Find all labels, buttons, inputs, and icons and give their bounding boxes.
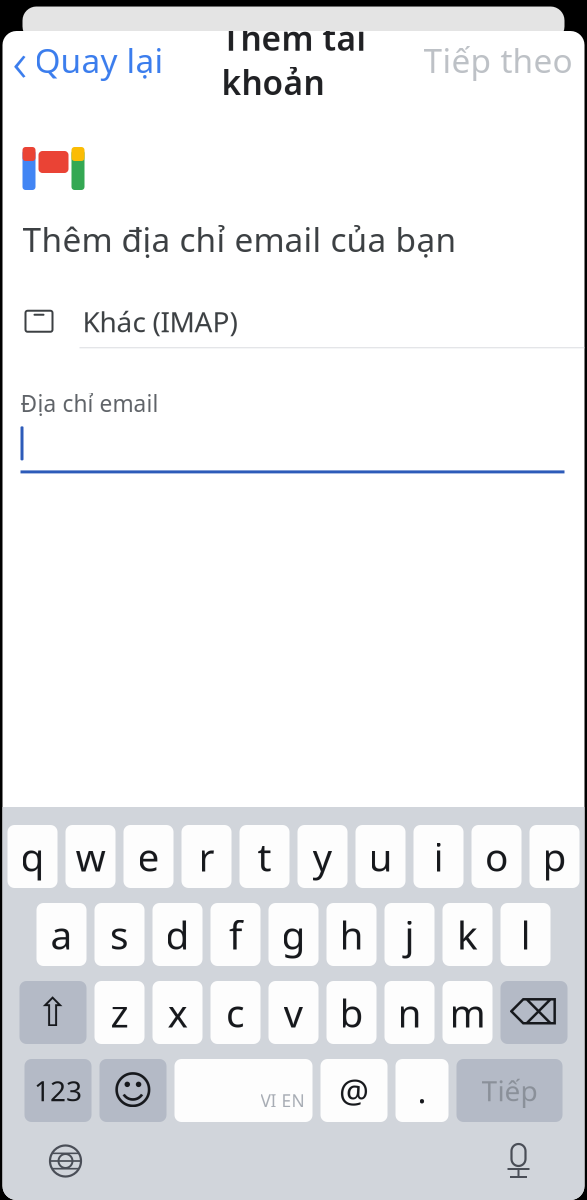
staticText: Thêm địa chỉ email của bạn [22,217,456,261]
staticText: z [110,987,128,1038]
button[interactable]: l [500,903,550,966]
staticText: Quay lại [34,38,163,82]
staticText: t [257,831,271,882]
staticText: x [167,987,187,1038]
button[interactable]: q [7,825,57,888]
staticText: q [20,831,44,882]
button[interactable]: Change keyboard [2,1139,87,1183]
staticText: e [137,831,159,882]
button[interactable]: 123 [24,1059,91,1122]
staticText: l [520,909,530,960]
staticText: c [226,987,245,1038]
staticText: Thêm tài khoản [221,16,365,104]
button[interactable]: Emoji [99,1059,166,1122]
staticText: VI EN [260,1089,304,1112]
staticText: i [433,831,443,882]
button[interactable]: v [268,981,318,1044]
button[interactable]: d [152,903,202,966]
staticText: y [312,831,332,882]
staticText: Khác (IMAP) [82,303,237,340]
staticText: Tiếp [481,1072,537,1109]
button[interactable]: x [152,981,202,1044]
staticText: Tiếp theo [423,38,572,82]
staticText: ⌫ [509,993,558,1032]
staticText: Địa chỉ email [20,388,158,418]
staticText: ⇧ [36,990,70,1035]
button[interactable]: m [442,981,492,1044]
button[interactable]: p [529,825,579,888]
button[interactable]: Tiếp theo [423,30,584,90]
staticText: m [449,987,485,1038]
button[interactable]: . [395,1059,448,1122]
staticText: s [110,909,129,960]
staticText: a [50,909,72,960]
button[interactable]: j [384,903,434,966]
button[interactable]: b [326,981,376,1044]
button[interactable]: a [36,903,86,966]
button[interactable]: Delete [500,981,567,1044]
staticText: k [457,909,478,960]
staticText: u [368,831,392,882]
button[interactable]: Shift [19,981,86,1044]
button[interactable]: ‹ [2,15,163,105]
button[interactable]: Space [174,1059,312,1122]
button[interactable]: Tiếp [456,1059,562,1122]
staticText: b [339,987,363,1038]
button[interactable]: Khác (IMAP) [2,295,584,348]
button[interactable]: e [123,825,173,888]
button[interactable]: r [181,825,231,888]
button[interactable]: c [210,981,260,1044]
button[interactable]: h [326,903,376,966]
staticText: g [281,909,305,960]
staticText: . [417,1068,426,1113]
button[interactable]: @ [320,1059,387,1122]
staticText: o [485,831,508,882]
staticText: r [198,831,214,882]
staticText: p [542,831,566,882]
staticText: h [339,909,363,960]
staticText: d [165,909,189,960]
staticText: ‹ [12,23,27,97]
button[interactable]: u [355,825,405,888]
button[interactable]: g [268,903,318,966]
staticText: w [75,831,105,882]
button[interactable]: k [442,903,492,966]
staticText: @ [339,1068,369,1113]
button[interactable]: s [94,903,144,966]
button[interactable]: y [297,825,347,888]
button[interactable]: f [210,903,260,966]
button[interactable]: t [239,825,289,888]
button[interactable]: o [471,825,521,888]
button[interactable]: Dictate [496,1139,584,1183]
staticText: f [229,909,242,960]
button[interactable]: w [65,825,115,888]
staticText: 123 [34,1072,82,1109]
staticText: n [397,987,421,1038]
staticText: j [404,909,414,960]
button[interactable]: i [413,825,463,888]
staticText: ☺ [112,1068,154,1113]
staticText: v [283,987,303,1038]
button[interactable]: z [94,981,144,1044]
button[interactable]: n [384,981,434,1044]
